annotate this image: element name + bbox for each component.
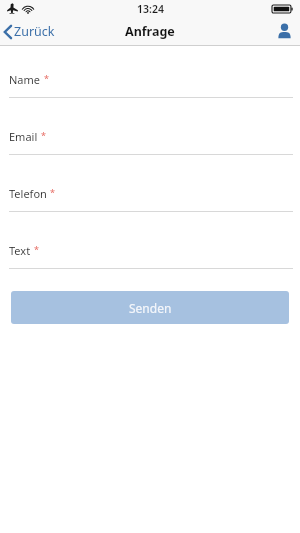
staticText: Email [9, 129, 38, 144]
staticText: Senden [129, 300, 172, 316]
button[interactable]: Text [0, 243, 300, 269]
staticText: Zurück [14, 23, 55, 40]
button[interactable]: Email [0, 129, 300, 155]
button[interactable]: Telefon [0, 186, 300, 212]
button[interactable]: Name [0, 72, 300, 98]
button[interactable]: Senden [11, 291, 289, 324]
button[interactable]: Zurück [0, 20, 63, 43]
staticText: Name [9, 72, 41, 87]
staticText: * [44, 72, 49, 84]
staticText: Anfrage [125, 23, 175, 40]
staticText: * [34, 243, 39, 255]
staticText: Telefon [9, 186, 47, 201]
staticText: 13:24 [137, 2, 164, 16]
staticText: * [41, 129, 46, 141]
staticText: * [50, 186, 55, 198]
staticText: Text [9, 243, 31, 258]
button[interactable]: Account [269, 20, 300, 42]
